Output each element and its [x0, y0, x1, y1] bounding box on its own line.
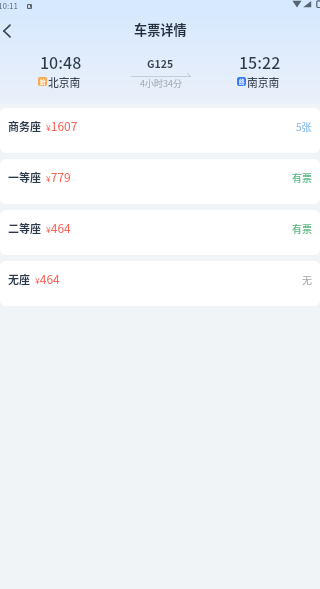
staticText: ¥1607 — [46, 117, 78, 134]
staticText: 10:11 — [0, 0, 18, 12]
staticText: 商务座 — [8, 118, 41, 134]
staticText: 南京南 — [247, 74, 280, 90]
button[interactable]: Back — [0, 17, 26, 43]
staticText: 无座 — [8, 271, 30, 287]
staticText: A — [28, 4, 31, 9]
button[interactable]: 无座 — [0, 261, 320, 306]
staticText: 无 — [302, 272, 312, 286]
staticText: 5张 — [296, 119, 312, 133]
staticText: ¥779 — [46, 168, 71, 185]
staticText: 15:22 — [239, 50, 281, 73]
staticText: 终 — [239, 78, 245, 86]
staticText: 二等座 — [8, 220, 41, 236]
staticText: 有票 — [292, 221, 312, 235]
staticText: ¥464 — [46, 219, 71, 236]
staticText: G125 — [147, 56, 174, 71]
staticText: 车票详情 — [134, 20, 187, 39]
button[interactable]: 一等座 — [0, 159, 320, 204]
staticText: 10:48 — [40, 50, 82, 73]
staticText: 4小时34分 — [140, 77, 182, 90]
staticText: 有票 — [292, 170, 312, 184]
button[interactable]: 商务座 — [0, 108, 320, 153]
staticText: ¥464 — [35, 270, 60, 287]
button[interactable]: 二等座 — [0, 210, 320, 255]
staticText: 一等座 — [8, 169, 41, 185]
staticText: 北京南 — [48, 74, 81, 90]
staticText: 始 — [40, 78, 46, 86]
